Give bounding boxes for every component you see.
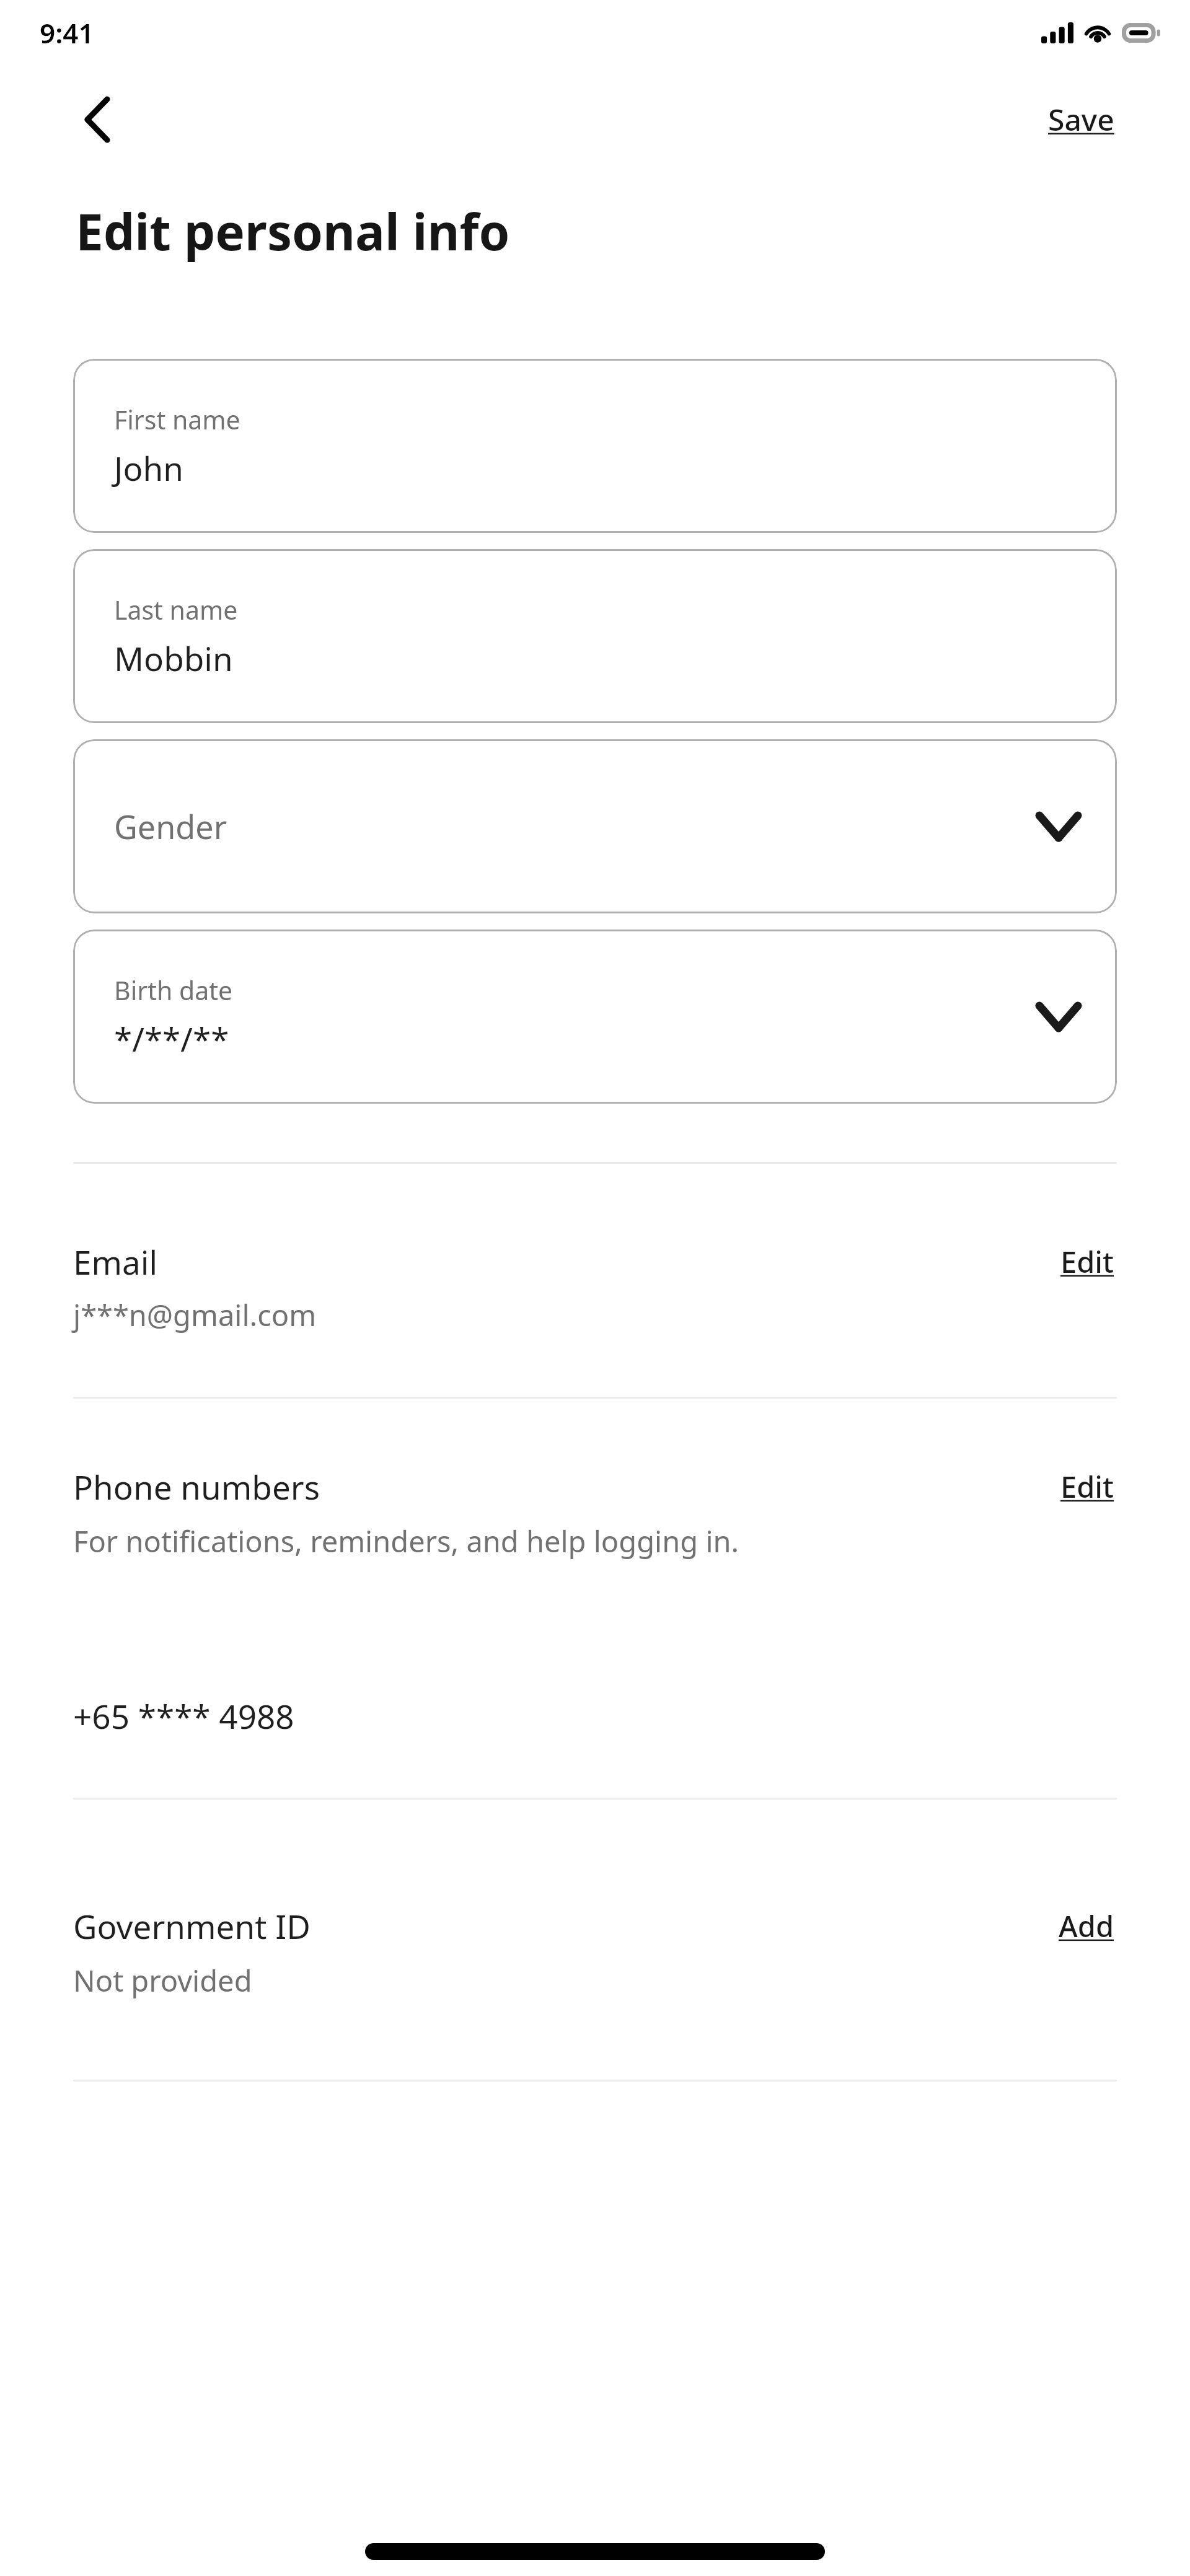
staticText: */**/** (114, 1016, 229, 1061)
staticText: First name (114, 402, 240, 437)
button[interactable]: Birth date (1029, 987, 1088, 1047)
button[interactable]: Add (1056, 1902, 1117, 1950)
button[interactable]: Birth date (73, 930, 1117, 1104)
staticText: Birth date (114, 973, 233, 1008)
staticText: Not provided (73, 1961, 252, 2000)
staticText: Edit (1060, 1467, 1114, 1506)
staticText: Phone numbers (73, 1464, 320, 1509)
staticText: Mobbin (114, 636, 233, 680)
staticText: Edit personal info (76, 197, 510, 265)
staticText: Save (1048, 99, 1114, 139)
staticText: 9:41 (40, 14, 94, 51)
button[interactable]: Edit (1058, 1463, 1117, 1510)
staticText: Government ID (73, 1904, 311, 1948)
button[interactable]: Back (67, 90, 126, 149)
staticText: Email (73, 1239, 158, 1284)
button[interactable]: First name (73, 359, 1117, 533)
staticText: +65 **** 4988 (73, 1694, 294, 1738)
button[interactable]: Gender (73, 739, 1117, 913)
staticText: Add (1059, 1906, 1114, 1946)
button[interactable]: Gender (1029, 797, 1088, 856)
staticText: John (114, 446, 184, 490)
button[interactable]: Edit (1058, 1238, 1117, 1285)
staticText: For notifications, reminders, and help l… (73, 1521, 739, 1561)
staticText: Gender (114, 804, 227, 848)
staticText: Edit (1060, 1242, 1114, 1281)
staticText: j***n@gmail.com (73, 1295, 317, 1335)
button[interactable]: Last name (73, 549, 1117, 723)
staticText: Last name (114, 592, 238, 627)
button[interactable]: Save (1046, 94, 1117, 144)
